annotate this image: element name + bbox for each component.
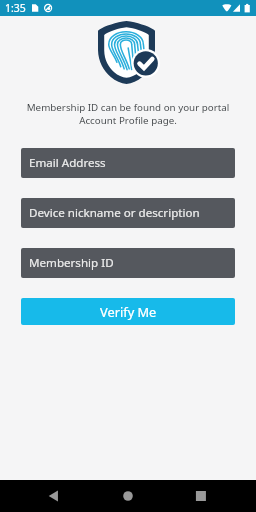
button[interactable]: Device nickname or description <box>21 198 235 228</box>
staticText: Account Profile page. <box>10 114 246 127</box>
staticText: Membership ID can be found on your porta… <box>10 101 246 114</box>
button[interactable]: Email Address <box>21 148 235 178</box>
staticText: Membership ID <box>29 255 114 271</box>
staticText: Email Address <box>29 155 106 171</box>
button[interactable]: Membership ID <box>21 248 235 278</box>
staticText: 1:35 <box>5 1 26 15</box>
button[interactable]: Verify Me <box>21 298 235 325</box>
staticText: Device nickname or description <box>29 205 200 221</box>
button[interactable]: Recent apps <box>171 480 256 512</box>
button[interactable]: Back <box>0 480 86 512</box>
staticText: Verify Me <box>100 303 157 320</box>
button[interactable]: Home <box>86 480 171 512</box>
